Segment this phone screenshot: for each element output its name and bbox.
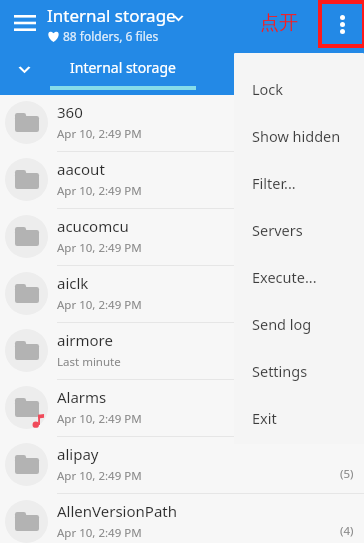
button[interactable]: acucomcu xyxy=(0,209,364,266)
button[interactable]: aiclk xyxy=(0,266,364,323)
button[interactable]: Alarms xyxy=(0,380,364,437)
staticText: 88 folders, 6 files xyxy=(63,28,159,44)
button[interactable]: Send log xyxy=(234,300,364,347)
staticText: Send log xyxy=(252,314,312,334)
button[interactable]: Lock xyxy=(234,65,364,112)
staticText: 点开 xyxy=(260,11,298,35)
staticText: AllenVersionPath xyxy=(57,501,177,521)
staticText: alipay xyxy=(57,444,99,464)
button[interactable]: Collapse xyxy=(2,48,46,92)
staticText: airmore xyxy=(57,330,113,350)
staticText: Lock xyxy=(252,79,284,99)
button[interactable]: Show hidden xyxy=(234,112,364,159)
staticText: Show hidden xyxy=(252,126,341,146)
staticText: Settings xyxy=(252,361,308,381)
staticText: Apr 10, 2:49 PM xyxy=(57,525,142,541)
button[interactable]: Execute... xyxy=(234,253,364,300)
staticText: (5) xyxy=(340,466,354,482)
button[interactable]: Change storage xyxy=(166,6,190,30)
button[interactable]: Settings xyxy=(234,347,364,394)
button[interactable]: airmore xyxy=(0,323,364,380)
button[interactable]: Servers xyxy=(234,206,364,253)
button[interactable]: Internal storage xyxy=(50,48,196,95)
staticText: Apr 10, 2:49 PM xyxy=(57,240,142,256)
staticText: Internal storage xyxy=(47,4,176,27)
staticText: (4) xyxy=(340,523,354,539)
button[interactable]: AllenVersionPath xyxy=(0,494,364,543)
button[interactable]: Exit xyxy=(234,394,364,441)
staticText: Apr 10, 2:49 PM xyxy=(57,468,142,484)
staticText: aacout xyxy=(57,159,105,179)
staticText: Last minute xyxy=(57,354,121,370)
staticText: Apr 10, 2:49 PM xyxy=(57,297,142,313)
staticText: Alarms xyxy=(57,387,107,407)
staticText: acucomcu xyxy=(57,216,129,236)
staticText: Exit xyxy=(252,408,277,428)
staticText: Internal storage xyxy=(70,58,176,77)
staticText: 360 xyxy=(57,102,83,122)
button[interactable]: More options xyxy=(320,2,364,46)
button[interactable]: aacout xyxy=(0,152,364,209)
button[interactable]: alipay xyxy=(0,437,364,494)
button[interactable]: Open navigation drawer xyxy=(2,0,48,46)
staticText: Apr 10, 2:49 PM xyxy=(57,126,142,142)
staticText: Apr 10, 2:49 PM xyxy=(57,183,142,199)
staticText: Filter... xyxy=(252,173,296,193)
staticText: Servers xyxy=(252,220,303,240)
button[interactable]: 360 xyxy=(0,95,364,152)
staticText: aiclk xyxy=(57,273,89,293)
staticText: Apr 10, 2:49 PM xyxy=(57,411,142,427)
staticText: Execute... xyxy=(252,267,317,287)
button[interactable]: Filter... xyxy=(234,159,364,206)
